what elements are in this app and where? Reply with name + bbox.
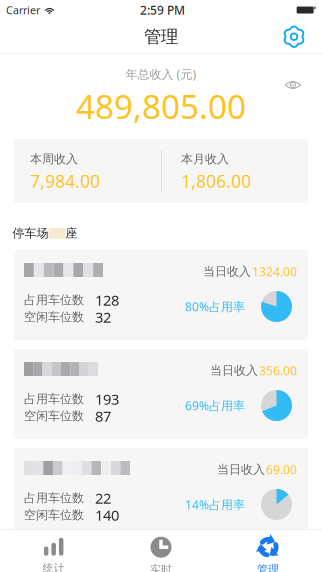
staticText: 统计 (43, 562, 65, 572)
staticText: 当日收入 (217, 462, 265, 477)
staticText: 当日收入 (203, 264, 251, 279)
staticText: 本月收入 (181, 152, 229, 166)
staticText: 193 (95, 389, 119, 409)
staticText: 占用车位数 (24, 491, 84, 505)
staticText: 87 (95, 406, 111, 426)
staticText: 管理 (144, 26, 178, 47)
staticText: 7,984.00 (30, 169, 100, 192)
staticText: 1324.00 (252, 263, 297, 279)
staticText: 22 (95, 488, 111, 508)
staticText: 69%占用率 (185, 397, 245, 413)
staticText: 年总收入 (元) (125, 66, 196, 82)
button[interactable]: 占用车位数 (14, 448, 308, 538)
button[interactable]: 统计 (0, 529, 107, 572)
staticText: 128 (95, 290, 119, 310)
staticText: Carrier (6, 3, 40, 17)
button[interactable]: 占用车位数 (14, 250, 308, 340)
staticText: 69.00 (266, 461, 297, 477)
staticText: 空闲车位数 (24, 409, 84, 423)
staticText: 停车场 (12, 226, 48, 241)
staticText: 489,805.00 (76, 84, 246, 128)
staticText: 1,806.00 (181, 169, 251, 192)
staticText: 当日收入 (210, 363, 258, 378)
staticText: 本周收入 (30, 152, 78, 166)
staticText: 占用车位数 (24, 392, 84, 406)
staticText: 空闲车位数 (24, 310, 84, 324)
staticText: 实时 (150, 563, 172, 572)
button[interactable]: 管理 (215, 529, 322, 572)
staticText: 占用车位数 (24, 293, 84, 307)
staticText: 空闲车位数 (24, 508, 84, 522)
button[interactable]: Settings (279, 22, 309, 52)
staticText: 2:59 PM (140, 2, 185, 18)
staticText: 140 (95, 505, 119, 525)
staticText: 座 (65, 226, 77, 241)
staticText: 管理 (257, 563, 279, 572)
button[interactable]: 实时 (107, 529, 215, 572)
button[interactable]: Toggle income visibility (281, 76, 305, 94)
button[interactable]: 占用车位数 (14, 349, 308, 439)
staticText: 80%占用率 (185, 298, 245, 314)
staticText: 32 (95, 307, 111, 327)
staticText: 14%占用率 (185, 496, 245, 512)
staticText: 356.00 (259, 362, 297, 378)
